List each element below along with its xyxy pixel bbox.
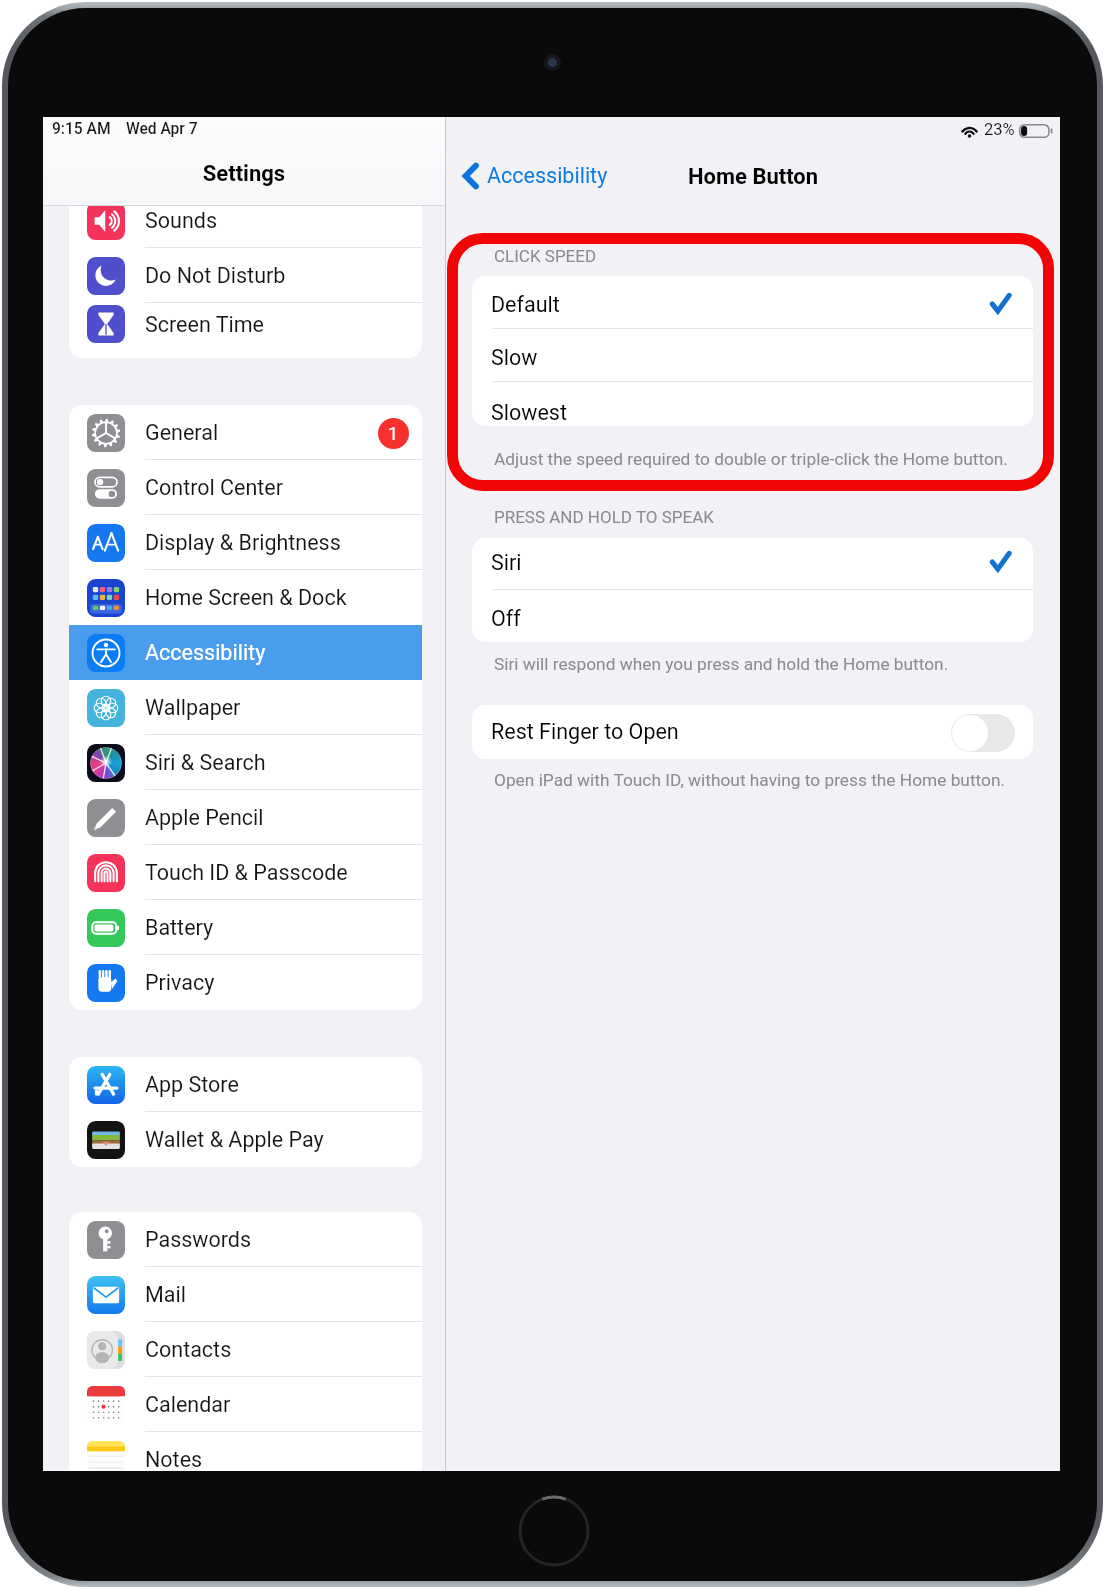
button[interactable]: Accessibility	[463, 162, 608, 188]
staticText: Mail	[145, 1282, 186, 1307]
staticText: Default	[491, 292, 560, 317]
button[interactable]: Contacts	[69, 1322, 422, 1377]
button[interactable]: Do Not Disturb	[69, 248, 422, 303]
staticText: Adjust the speed required to double or t…	[494, 449, 1008, 469]
staticText: Wed Apr 7	[126, 120, 198, 138]
button[interactable]: Display & Brightness	[69, 515, 422, 570]
staticText: Siri	[491, 550, 522, 575]
button[interactable]: Privacy	[69, 955, 422, 1010]
button[interactable]: Apple Pencil	[69, 790, 422, 845]
staticText: 23%	[984, 120, 1015, 139]
staticText: Siri will respond when you press and hol…	[494, 654, 949, 674]
button[interactable]: Calendar	[69, 1377, 422, 1432]
button[interactable]: Siri	[472, 538, 1033, 590]
staticText: Open iPad with Touch ID, without having …	[494, 770, 1006, 790]
button[interactable]: Home Screen & Dock	[69, 570, 422, 625]
staticText: Slowest	[491, 400, 567, 425]
staticText: Screen Time	[145, 312, 265, 337]
button[interactable]: Battery	[69, 900, 422, 955]
button[interactable]: Accessibility	[69, 625, 422, 680]
staticText: Battery	[145, 915, 214, 940]
staticText: Wallpaper	[145, 695, 241, 720]
staticText: Control Center	[145, 475, 284, 500]
button[interactable]: Slowest	[472, 382, 1033, 426]
button[interactable]: Rest Finger to Open	[472, 705, 1033, 759]
button[interactable]: General	[69, 405, 422, 460]
button[interactable]: Default	[472, 276, 1033, 329]
button[interactable]: Notes	[69, 1432, 422, 1471]
staticText: Do Not Disturb	[145, 263, 286, 288]
button[interactable]: Rest Finger to Open toggle, off	[951, 714, 1015, 752]
staticText: Wallet & Apple Pay	[145, 1127, 324, 1152]
button[interactable]: App Store	[69, 1057, 422, 1112]
button[interactable]: Slow	[472, 329, 1033, 382]
staticText: Home Screen & Dock	[145, 585, 347, 610]
button[interactable]: Passwords	[69, 1212, 422, 1267]
staticText: Rest Finger to Open	[491, 719, 679, 744]
staticText: 9:15 AM	[52, 120, 111, 138]
button[interactable]: Sounds	[69, 206, 422, 248]
button[interactable]: Control Center	[69, 460, 422, 515]
button[interactable]: Off	[472, 590, 1033, 642]
button[interactable]: Wallpaper	[69, 680, 422, 735]
staticText: Calendar	[145, 1392, 231, 1417]
staticText: Settings	[43, 161, 445, 187]
button[interactable]: Siri & Search	[69, 735, 422, 790]
staticText: CLICK SPEED	[494, 246, 597, 266]
staticText: Passwords	[145, 1227, 252, 1252]
button[interactable]: Home	[518, 1495, 590, 1567]
staticText: Slow	[491, 345, 538, 370]
staticText: Off	[491, 606, 521, 631]
staticText: General	[145, 420, 219, 445]
button[interactable]: Wallet & Apple Pay	[69, 1112, 422, 1167]
staticText: Accessibility	[145, 640, 266, 665]
staticText: 1	[388, 423, 399, 444]
button[interactable]: Touch ID & Passcode	[69, 845, 422, 900]
button[interactable]: Mail	[69, 1267, 422, 1322]
staticText: Home Button	[688, 164, 819, 190]
staticText: Apple Pencil	[145, 805, 264, 830]
staticText: PRESS AND HOLD TO SPEAK	[494, 507, 714, 527]
staticText: Sounds	[145, 208, 217, 233]
staticText: Siri & Search	[145, 750, 266, 775]
staticText: Notes	[145, 1447, 203, 1471]
button[interactable]: Screen Time	[69, 303, 422, 345]
staticText: Contacts	[145, 1337, 232, 1362]
staticText: Privacy	[145, 970, 215, 995]
staticText: App Store	[145, 1072, 239, 1097]
staticText: Display & Brightness	[145, 530, 341, 555]
staticText: Accessibility	[487, 163, 608, 188]
staticText: Touch ID & Passcode	[145, 860, 348, 885]
